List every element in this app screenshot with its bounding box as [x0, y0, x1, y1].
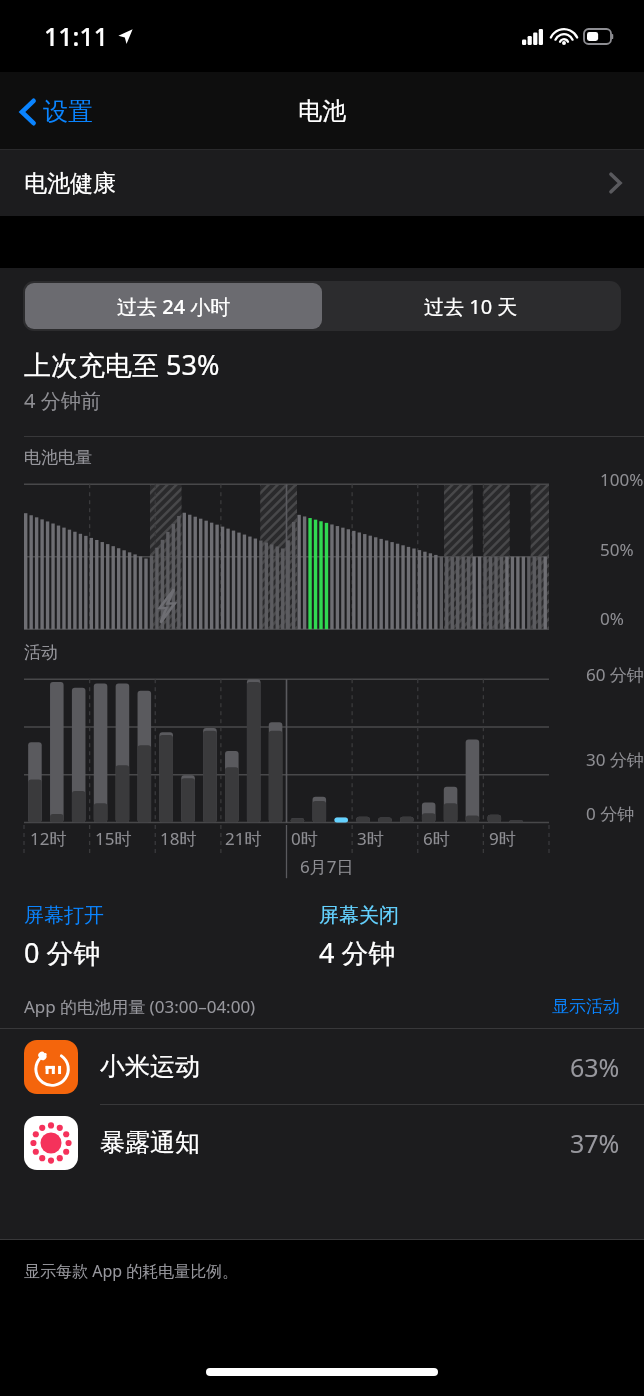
- staticText: 暴露通知: [100, 1127, 200, 1158]
- staticText: 0时: [291, 827, 318, 850]
- staticText: 3时: [357, 827, 384, 850]
- staticText: 21时: [225, 827, 262, 850]
- staticText: 上次充电至 53%: [24, 346, 220, 383]
- button[interactable]: 暴露通知: [0, 1105, 644, 1180]
- staticText: 屏幕打开: [24, 903, 104, 928]
- staticText: 0 分钟: [586, 802, 635, 825]
- staticText: 显示活动: [552, 996, 620, 1017]
- staticText: 电池电量: [24, 447, 92, 468]
- staticText: App 的电池用量 (03:00–04:00): [24, 995, 256, 1018]
- staticText: 0 分钟: [24, 934, 101, 971]
- button[interactable]: 设置: [16, 90, 97, 133]
- staticText: 设置: [43, 96, 93, 127]
- button[interactable]: 显示活动: [552, 996, 620, 1017]
- staticText: 屏幕关闭: [319, 903, 399, 928]
- staticText: 4 分钟: [319, 934, 396, 971]
- staticText: 过去 24 小时: [117, 293, 231, 320]
- staticText: 0%: [600, 607, 624, 630]
- other: 小米运动: [24, 1040, 78, 1094]
- other: 暴露通知: [24, 1116, 78, 1170]
- button[interactable]: 过去 10 天: [322, 283, 619, 329]
- staticText: 电池健康: [24, 169, 116, 198]
- staticText: 63%: [570, 1050, 620, 1084]
- button[interactable]: 过去 24 小时: [25, 283, 322, 329]
- staticText: 50%: [600, 538, 634, 561]
- button[interactable]: 电池健康: [0, 150, 644, 216]
- staticText: 9时: [489, 827, 516, 850]
- staticText: 显示每款 App 的耗电量比例。: [24, 1260, 239, 1282]
- staticText: 11:11: [44, 19, 109, 53]
- staticText: 100%: [600, 468, 644, 491]
- staticText: 小米运动: [100, 1051, 200, 1082]
- button[interactable]: 小米运动: [0, 1029, 644, 1104]
- staticText: 6时: [423, 827, 450, 850]
- staticText: 6月7日: [300, 855, 354, 878]
- staticText: 15时: [95, 827, 132, 850]
- staticText: 电池: [298, 96, 346, 126]
- staticText: 过去 10 天: [424, 293, 518, 320]
- staticText: 12时: [30, 827, 67, 850]
- staticText: 37%: [570, 1126, 620, 1160]
- staticText: 4 分钟前: [24, 387, 101, 414]
- staticText: 18时: [160, 827, 197, 850]
- staticText: 活动: [24, 642, 58, 663]
- staticText: 30 分钟: [586, 748, 644, 771]
- staticText: 60 分钟: [586, 663, 644, 686]
